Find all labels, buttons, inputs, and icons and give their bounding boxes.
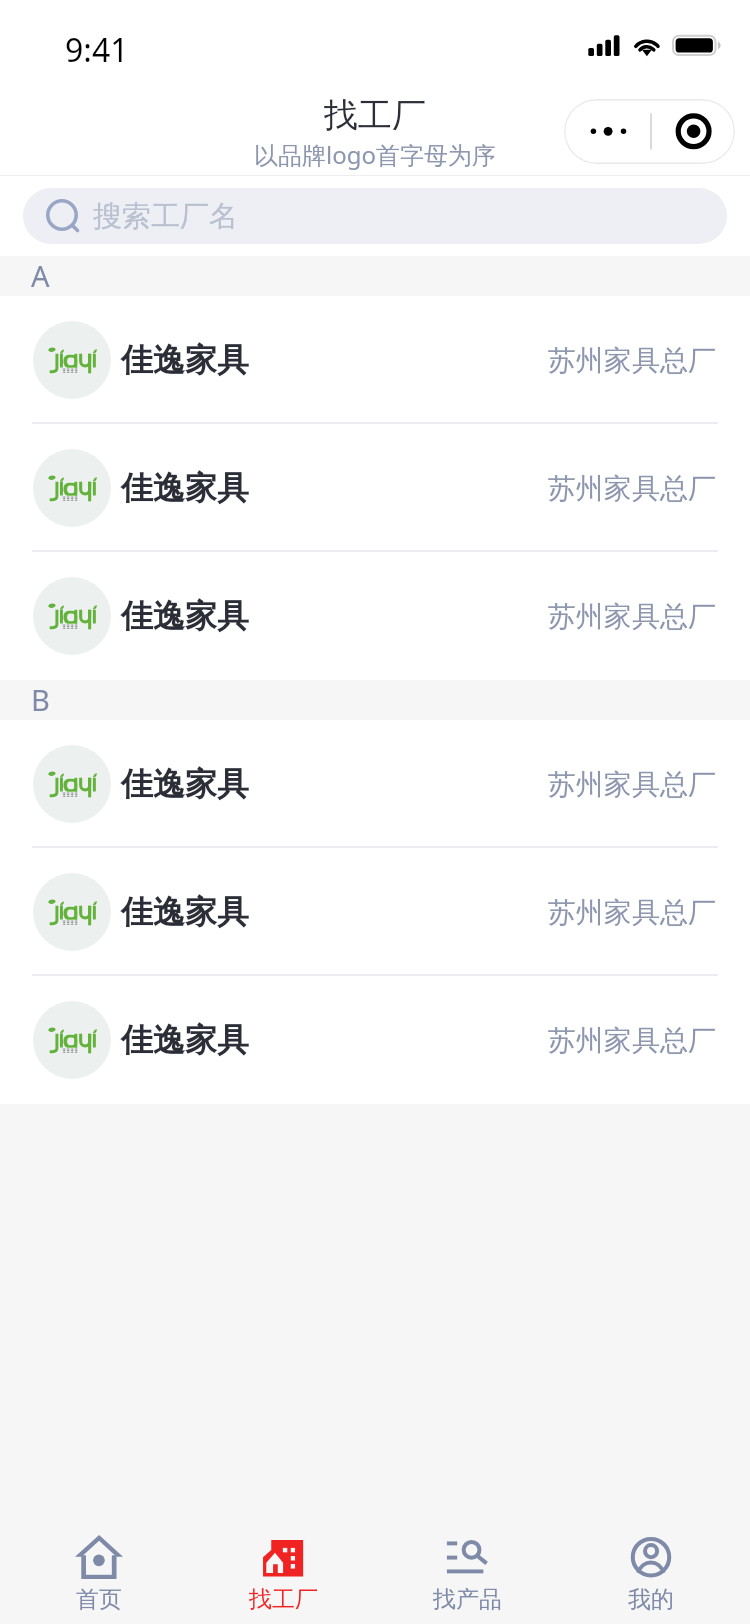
staticText: 佳逸家具 [121,1020,249,1060]
staticText: A [31,256,50,291]
button[interactable]: 找工厂 [191,1490,375,1624]
staticText: B [31,680,50,715]
staticText: 苏州家具总厂 [548,343,716,378]
staticText: 首页 [76,1585,122,1614]
button[interactable]: 首页 [7,1490,191,1624]
staticText: 苏州家具总厂 [548,767,716,802]
staticText: 搜索工厂名 [93,198,238,235]
staticText: 佳逸家具 [121,468,249,508]
staticText: 苏州家具总厂 [548,599,716,634]
button[interactable]: 搜索工厂名 [23,188,727,244]
button[interactable]: 佳逸家具 [0,848,750,976]
staticText: 找工厂 [324,94,426,137]
staticText: 找产品 [433,1585,502,1614]
staticText: 苏州家具总厂 [548,471,716,506]
staticText: 佳逸家具 [121,764,249,804]
button[interactable]: 佳逸家具 [0,720,750,848]
staticText: 以品牌logo首字母为序 [254,138,496,171]
staticText: 我的 [628,1585,674,1614]
staticText: 佳逸家具 [121,596,249,636]
staticText: 苏州家具总厂 [548,1023,716,1058]
staticText: 苏州家具总厂 [548,895,716,930]
button[interactable]: 佳逸家具 [0,552,750,680]
staticText: 9:41 [65,28,129,72]
button[interactable]: 佳逸家具 [0,296,750,424]
button[interactable]: 我的 [559,1490,743,1624]
staticText: 佳逸家具 [121,892,249,932]
button[interactable]: 佳逸家具 [0,424,750,552]
staticText: 佳逸家具 [121,340,249,380]
button[interactable]: More options [564,99,649,164]
staticText: 找工厂 [249,1585,318,1614]
button[interactable]: 找产品 [375,1490,559,1624]
button[interactable]: Close mini program [649,99,735,164]
button[interactable]: 佳逸家具 [0,976,750,1104]
